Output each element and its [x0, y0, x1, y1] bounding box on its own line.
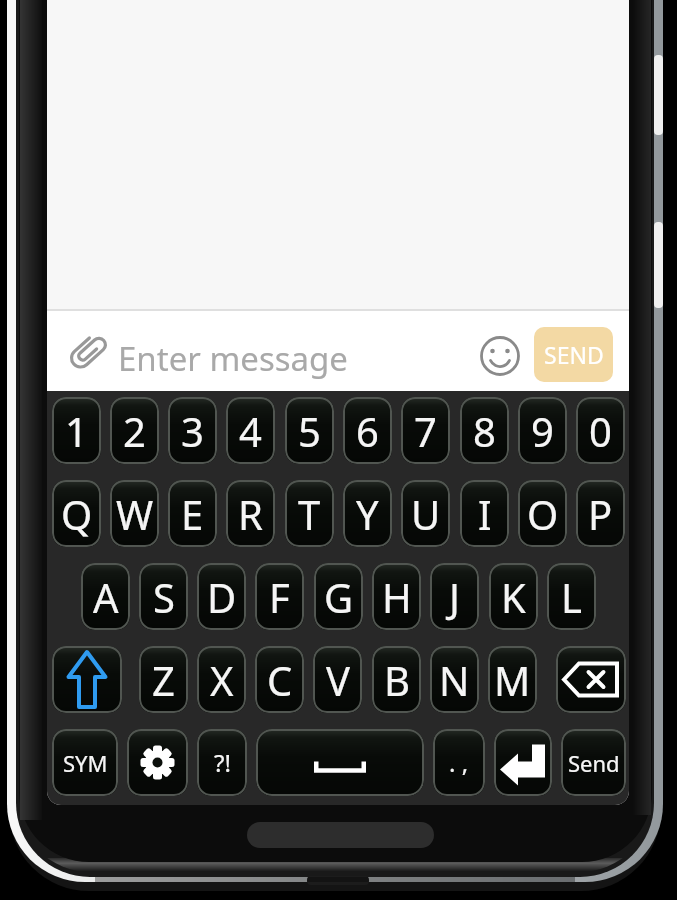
staticText: B	[384, 653, 410, 707]
staticText: 1	[65, 404, 88, 458]
staticText: R	[238, 487, 263, 541]
staticText: SEND	[544, 339, 604, 370]
button[interactable]	[478, 334, 522, 378]
button[interactable]: D	[197, 563, 246, 630]
staticText: ?!	[214, 746, 231, 779]
staticText: C	[267, 653, 293, 707]
button[interactable]: V	[313, 646, 362, 713]
button[interactable]: Q	[52, 480, 101, 547]
staticText: 5	[298, 404, 321, 458]
staticText: D	[207, 570, 237, 624]
button[interactable]: 3	[168, 397, 217, 464]
staticText: 8	[473, 404, 496, 458]
button[interactable]: 0	[576, 397, 625, 464]
button[interactable]: F	[255, 563, 304, 630]
button[interactable]: G	[314, 563, 363, 630]
staticText: O	[527, 487, 559, 541]
staticText: A	[93, 570, 119, 624]
button[interactable]	[52, 646, 122, 713]
button[interactable]: X	[197, 646, 246, 713]
button[interactable]: ?!	[197, 729, 247, 796]
button[interactable]: P	[576, 480, 625, 547]
button[interactable]: N	[430, 646, 479, 713]
button[interactable]: O	[518, 480, 567, 547]
button[interactable]: SYM	[52, 729, 118, 796]
button[interactable]: A	[81, 563, 130, 630]
button[interactable]: S	[139, 563, 188, 630]
staticText: G	[324, 570, 354, 624]
button[interactable]	[494, 729, 552, 796]
staticText: 4	[239, 404, 262, 458]
staticText: Q	[61, 487, 93, 541]
staticText: E	[181, 487, 204, 541]
button[interactable]: Y	[343, 480, 392, 547]
button[interactable]: 4	[226, 397, 275, 464]
staticText: . ,	[449, 746, 469, 779]
staticText: F	[269, 570, 290, 624]
button[interactable]: E	[168, 480, 217, 547]
button[interactable]: 1	[52, 397, 101, 464]
button[interactable]	[61, 330, 109, 378]
button[interactable]: C	[255, 646, 304, 713]
staticText: X	[210, 653, 234, 707]
button[interactable]: M	[488, 646, 537, 713]
button[interactable]: H	[372, 563, 421, 630]
button[interactable]: Z	[139, 646, 188, 713]
staticText: Enter message	[118, 336, 348, 381]
button[interactable]: Send	[561, 729, 626, 796]
staticText: W	[116, 487, 154, 541]
staticText: K	[501, 570, 526, 624]
button[interactable]: I	[460, 480, 509, 547]
button[interactable]: T	[285, 480, 334, 547]
button[interactable]: L	[547, 563, 596, 630]
staticText: 3	[181, 404, 204, 458]
button[interactable]: SEND	[534, 327, 613, 382]
staticText: Y	[356, 487, 379, 541]
staticText: 7	[414, 404, 437, 458]
button[interactable]: W	[110, 480, 159, 547]
button[interactable]: 7	[401, 397, 450, 464]
staticText: 9	[531, 404, 554, 458]
staticText: H	[382, 570, 412, 624]
button[interactable]	[127, 729, 188, 796]
button[interactable]: R	[226, 480, 275, 547]
button[interactable]: 6	[343, 397, 392, 464]
button[interactable]: . ,	[433, 729, 485, 796]
button[interactable]: J	[430, 563, 479, 630]
button[interactable]: K	[489, 563, 538, 630]
staticText: 6	[356, 404, 379, 458]
staticText: Z	[152, 653, 175, 707]
staticText: Send	[568, 748, 620, 778]
staticText: 0	[589, 404, 612, 458]
staticText: N	[439, 653, 470, 707]
staticText: U	[411, 487, 441, 541]
button[interactable]: 2	[110, 397, 159, 464]
button[interactable]: B	[372, 646, 421, 713]
button[interactable]	[111, 316, 479, 386]
staticText: 2	[123, 404, 146, 458]
button[interactable]: U	[401, 480, 450, 547]
button[interactable]: 9	[518, 397, 567, 464]
staticText: V	[326, 653, 350, 707]
staticText: L	[561, 570, 582, 624]
staticText: I	[478, 487, 492, 541]
button[interactable]: 5	[285, 397, 334, 464]
button[interactable]	[556, 646, 626, 713]
staticText: T	[298, 487, 321, 541]
staticText: SYM	[63, 748, 108, 778]
staticText: S	[153, 570, 175, 624]
button[interactable]: 8	[460, 397, 509, 464]
staticText: J	[449, 570, 460, 624]
staticText: M	[494, 653, 531, 707]
staticText: P	[588, 487, 613, 541]
button[interactable]	[256, 729, 424, 796]
